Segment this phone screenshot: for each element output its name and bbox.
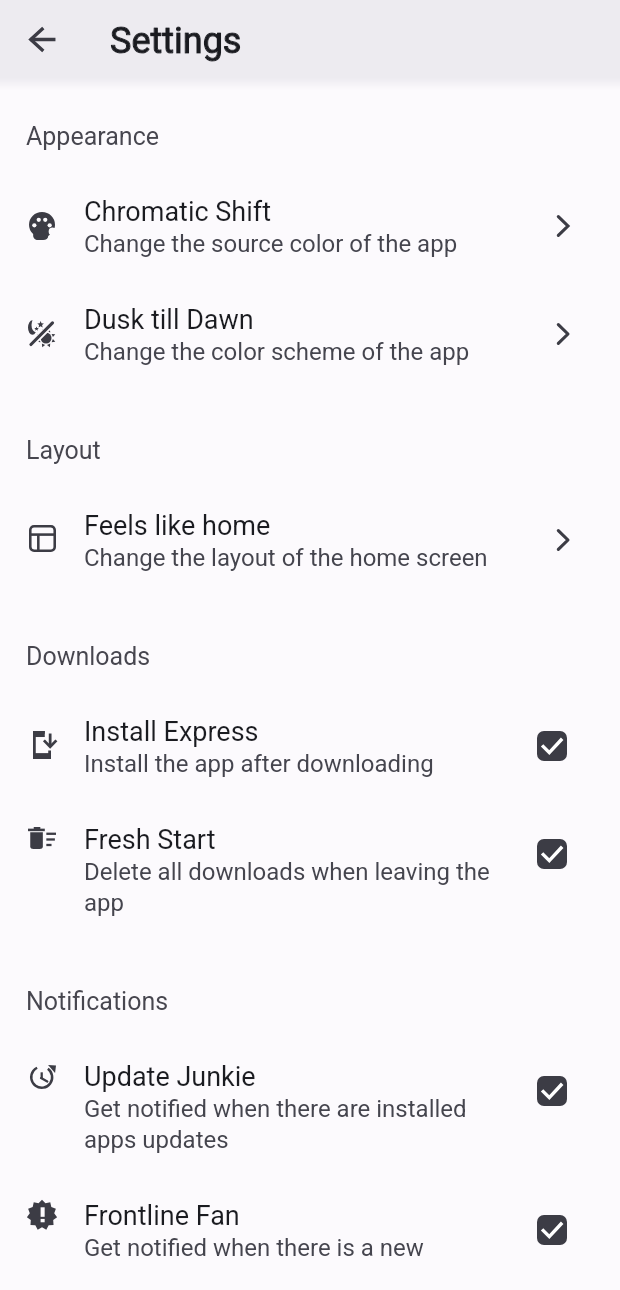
button[interactable]: Install Express: [0, 693, 620, 801]
staticText: Notifications: [26, 987, 169, 1016]
button[interactable]: Enabled: [537, 839, 567, 869]
staticText: Get notified when there is a new UpdateM…: [84, 1231, 508, 1267]
button[interactable]: Back: [18, 15, 66, 63]
staticText: Change the color scheme of the app: [84, 335, 470, 366]
button[interactable]: Open: [548, 525, 578, 555]
staticText: Get notified when there are installed ap…: [84, 1092, 508, 1154]
staticText: Downloads: [26, 642, 151, 671]
staticText: Delete all downloads when leaving the ap…: [84, 855, 508, 917]
staticText: Feels like home: [84, 511, 271, 541]
staticText: Update Junkie: [84, 1062, 256, 1092]
button[interactable]: Dusk till Dawn: [0, 281, 620, 389]
button[interactable]: Enabled: [537, 1215, 567, 1245]
staticText: Dusk till Dawn: [84, 305, 254, 335]
button[interactable]: Open: [548, 319, 578, 349]
staticText: Settings: [110, 20, 242, 62]
button[interactable]: Fresh Start: [0, 801, 620, 940]
staticText: Appearance: [26, 122, 159, 151]
staticText: Layout: [26, 436, 101, 465]
staticText: Chromatic Shift: [84, 197, 272, 227]
button[interactable]: Feels like home: [0, 487, 620, 595]
staticText: Change the source color of the app: [84, 227, 458, 258]
staticText: Fresh Start: [84, 825, 216, 855]
button[interactable]: Frontline Fan: [0, 1177, 620, 1290]
button[interactable]: Update Junkie: [0, 1038, 620, 1177]
staticText: Change the layout of the home screen: [84, 541, 488, 572]
button[interactable]: Chromatic Shift: [0, 173, 620, 281]
button[interactable]: Enabled: [537, 1076, 567, 1106]
staticText: Frontline Fan: [84, 1201, 240, 1231]
staticText: Install Express: [84, 717, 259, 747]
staticText: Install the app after downloading: [84, 747, 434, 778]
button[interactable]: Enabled: [537, 731, 567, 761]
staticText: Settings: [110, 20, 242, 62]
button[interactable]: Open: [548, 211, 578, 241]
